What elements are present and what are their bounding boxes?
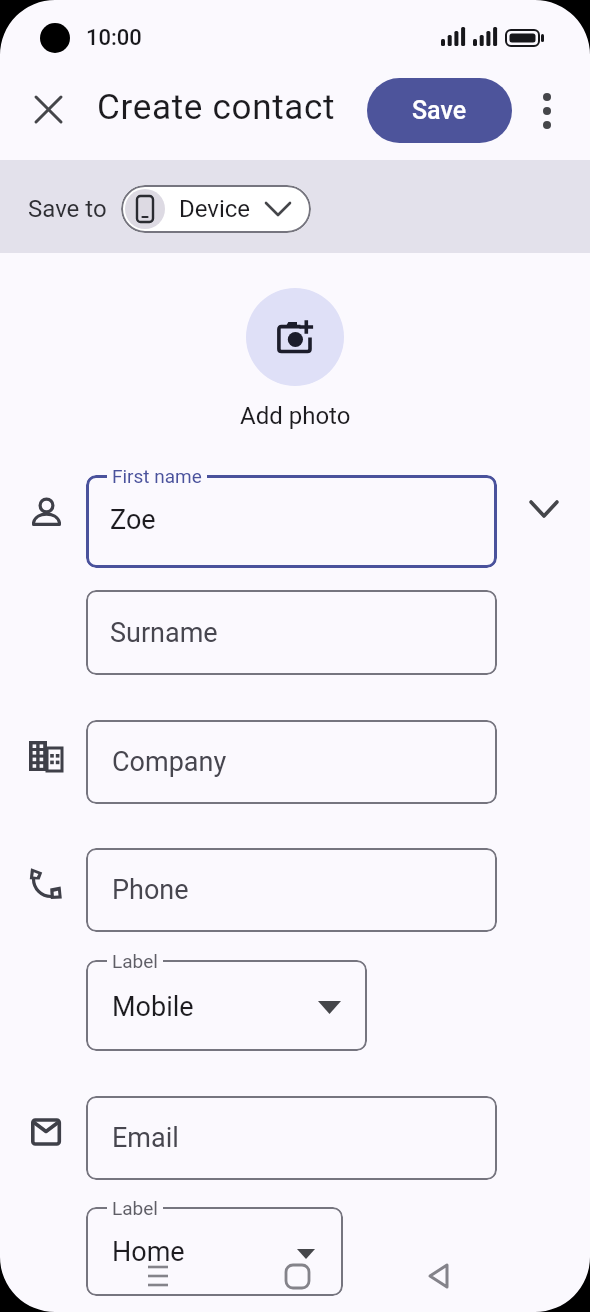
staticText: First name (112, 465, 202, 487)
button[interactable] (86, 848, 497, 932)
button[interactable]: Save (367, 78, 512, 143)
staticText: Zoe (110, 504, 156, 536)
staticText: 10:00 (86, 25, 142, 51)
staticText: Create contact (97, 87, 336, 128)
staticText: Email (112, 1122, 179, 1154)
staticText: Surname (110, 617, 218, 649)
staticText: Device (179, 195, 251, 223)
staticText: Save (412, 96, 467, 125)
staticText: Save to (28, 195, 107, 223)
button[interactable] (246, 288, 344, 386)
button[interactable] (523, 87, 571, 135)
staticText: Company (112, 746, 227, 778)
staticText: Mobile (112, 991, 194, 1023)
staticText: Phone (112, 874, 189, 906)
staticText: Add photo (240, 402, 351, 430)
staticText: Label (112, 1197, 158, 1219)
button[interactable]: Add photo (195, 400, 395, 432)
button[interactable] (86, 1096, 497, 1180)
button[interactable] (86, 590, 497, 675)
staticText: Home (112, 1236, 185, 1268)
button[interactable] (86, 720, 497, 804)
button[interactable] (519, 484, 569, 534)
staticText: Label (112, 950, 158, 972)
button[interactable] (24, 85, 72, 133)
button[interactable] (86, 475, 497, 568)
button[interactable] (86, 1207, 343, 1296)
button[interactable] (86, 960, 367, 1051)
button[interactable]: Device (121, 185, 311, 233)
